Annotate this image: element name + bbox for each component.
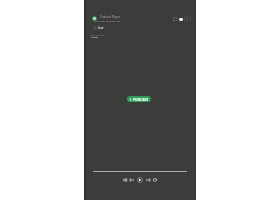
staticText: Audio	[91, 35, 98, 38]
button[interactable]: Cast to device	[172, 16, 178, 22]
staticText: Your daily episode mix	[94, 19, 121, 22]
staticText: Now playing	[90, 33, 105, 36]
button[interactable]: PODCAST	[127, 96, 151, 102]
button[interactable]: Repeat	[152, 177, 158, 183]
button[interactable]: Equalizer	[184, 15, 191, 22]
staticText: Podcast Player	[100, 15, 121, 19]
button[interactable]: Connected device	[178, 16, 184, 22]
button[interactable]: Shuffle	[122, 177, 128, 183]
staticText: PODCAST	[133, 97, 149, 101]
staticText: Live	[98, 26, 104, 30]
button[interactable]: Previous	[129, 177, 135, 183]
button[interactable]: Profile	[92, 16, 97, 21]
button[interactable]: Play	[136, 176, 144, 184]
button[interactable]: Live	[93, 26, 104, 30]
button[interactable]: Next	[145, 177, 151, 183]
